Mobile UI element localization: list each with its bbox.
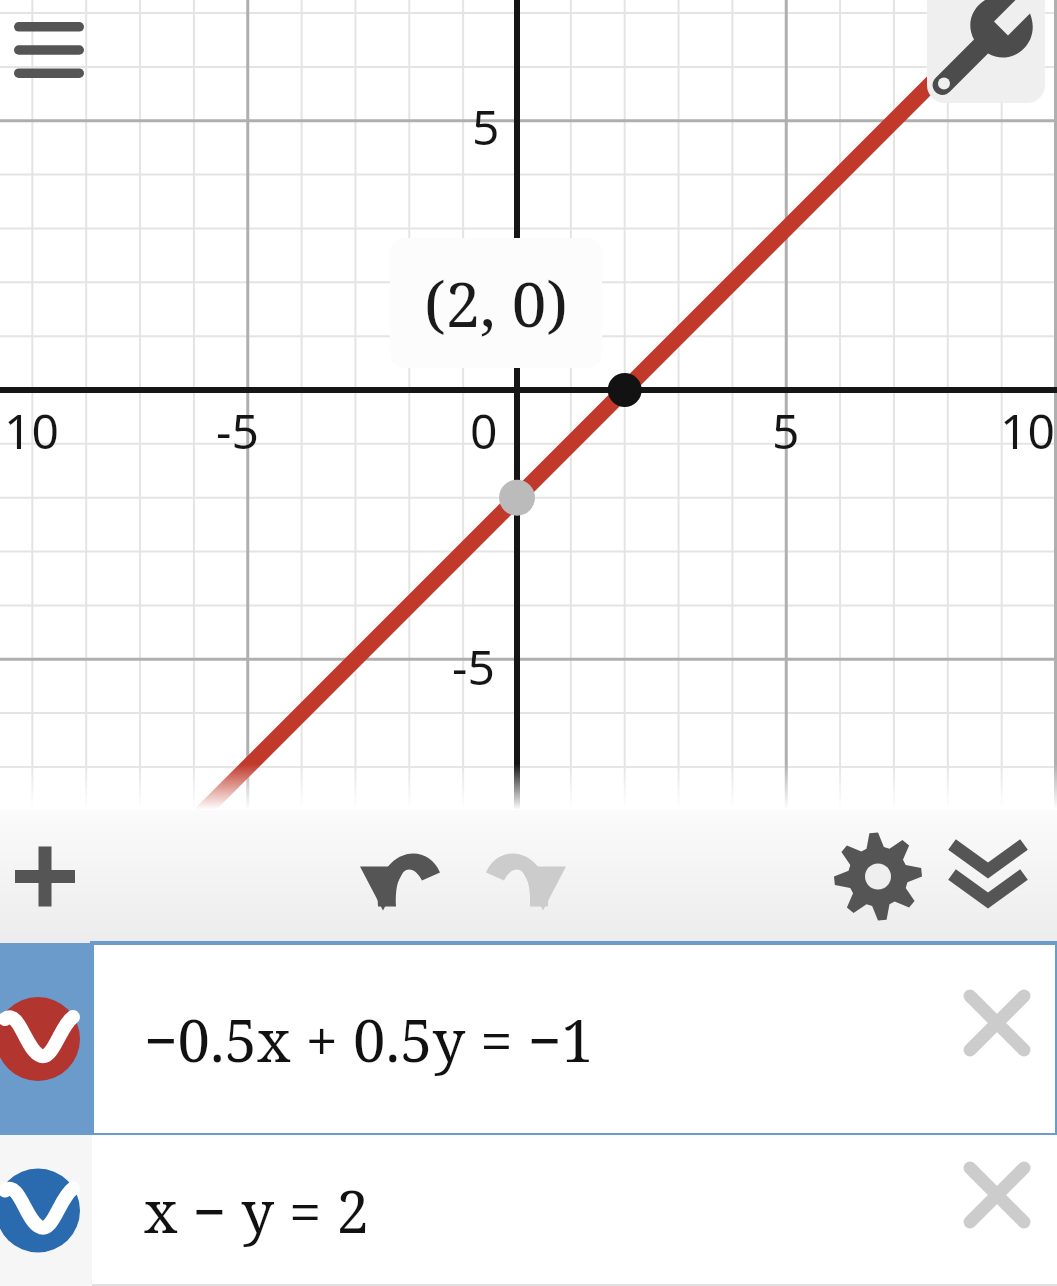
button[interactable]: Undo [353,810,463,943]
button[interactable]: Delete expression [947,1145,1047,1245]
button[interactable]: Settings [823,810,933,943]
staticText: -5 [216,398,259,463]
button[interactable]: Add expression [0,810,100,943]
button[interactable]: Redo [463,810,573,943]
staticText: x − y = 2 [144,1171,370,1250]
staticText: 10 [1000,398,1055,463]
staticText: −0.5x + 0.5y = −1 [144,1000,594,1079]
button[interactable]: x − y = 2 [0,1135,1057,1286]
staticText: 5 [472,94,500,159]
button[interactable]: Delete expression [947,973,1047,1073]
button[interactable]: Menu [14,22,84,78]
button[interactable]: Collapse [933,810,1043,943]
staticText: 5 [772,398,800,463]
staticText: (2, 0) [424,261,568,345]
staticText: 0 [470,398,498,463]
staticText: 10 [4,398,59,463]
button[interactable]: Graph settings [927,0,1045,103]
button[interactable]: −0.5x + 0.5y = −1 [0,943,1057,1135]
staticText: -5 [452,634,495,699]
button[interactable]: (2, 0) [390,238,602,368]
